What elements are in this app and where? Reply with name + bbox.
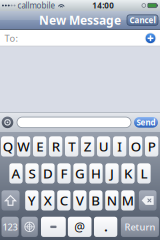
staticText: F — [60, 165, 67, 182]
button[interactable]: M — [121, 190, 134, 211]
staticText: U — [99, 138, 109, 155]
button[interactable]: Space — [41, 217, 66, 237]
button[interactable]: A — [9, 163, 23, 184]
staticText: N — [107, 192, 117, 209]
staticText: Cancel — [129, 15, 155, 25]
button[interactable]: Cancel — [127, 15, 158, 25]
button[interactable]: B — [89, 190, 102, 211]
button[interactable]: V — [73, 190, 86, 211]
button[interactable]: K — [121, 163, 135, 184]
button[interactable]: Period — [94, 217, 117, 237]
button[interactable]: R — [49, 136, 62, 156]
button[interactable]: W — [17, 136, 30, 156]
button[interactable]: H — [89, 163, 103, 184]
button[interactable]: Y — [25, 190, 38, 211]
staticText: Return — [124, 221, 155, 233]
staticText: X — [44, 192, 52, 209]
staticText: J — [110, 165, 114, 182]
button[interactable]: S — [25, 163, 39, 184]
button[interactable]: N — [105, 190, 118, 211]
button[interactable]: X — [41, 190, 54, 211]
staticText: P — [148, 138, 156, 155]
button[interactable]: At sign — [68, 217, 91, 237]
button[interactable]: O — [129, 136, 142, 156]
staticText: Send — [136, 117, 155, 128]
staticText: @ — [74, 219, 85, 235]
staticText: Q — [3, 138, 13, 155]
staticText: T — [68, 138, 75, 155]
staticText: C — [60, 192, 68, 209]
button[interactable]: U — [97, 136, 110, 156]
staticText: R — [52, 138, 60, 155]
staticText: K — [124, 165, 132, 182]
staticText: D — [43, 165, 53, 182]
button[interactable]: D — [41, 163, 55, 184]
button[interactable]: Add contact — [144, 32, 157, 45]
button[interactable]: Send — [134, 117, 158, 128]
staticText: Y — [28, 192, 36, 209]
button[interactable]: Change language — [21, 217, 38, 237]
button[interactable]: F — [57, 163, 71, 184]
button[interactable]: L — [137, 163, 151, 184]
button[interactable]: Delete — [139, 190, 156, 211]
button[interactable]: Attach media — [1, 116, 14, 129]
staticText: B — [91, 192, 100, 209]
button[interactable]: T — [65, 136, 78, 156]
staticText: 14:00 — [92, 0, 114, 11]
staticText: 123 — [3, 221, 18, 233]
staticText: H — [91, 165, 101, 182]
button[interactable]: Z — [81, 136, 94, 156]
staticText: S — [28, 165, 35, 182]
button[interactable]: Return — [121, 217, 159, 237]
staticText: G — [75, 165, 85, 182]
staticText: W — [17, 138, 30, 155]
staticText: I — [117, 138, 122, 155]
button[interactable]: G — [73, 163, 87, 184]
button[interactable]: I — [113, 136, 126, 156]
staticText: V — [76, 192, 84, 209]
staticText: E — [36, 138, 43, 155]
staticText: M — [122, 192, 134, 209]
staticText: Z — [84, 138, 92, 155]
staticText: A — [11, 165, 20, 182]
button[interactable]: P — [145, 136, 158, 156]
button[interactable]: Shift — [1, 190, 19, 211]
staticText: To: — [4, 32, 18, 44]
button[interactable]: Numbers — [1, 217, 19, 237]
staticText: callmobile — [17, 0, 55, 11]
button[interactable]: Q — [1, 136, 14, 156]
button[interactable]: E — [33, 136, 46, 156]
staticText: New Message — [39, 12, 121, 28]
staticText: . — [104, 219, 107, 235]
button[interactable]: J — [105, 163, 119, 184]
staticText: L — [140, 165, 147, 182]
button[interactable]: C — [57, 190, 70, 211]
staticText: O — [131, 138, 141, 155]
